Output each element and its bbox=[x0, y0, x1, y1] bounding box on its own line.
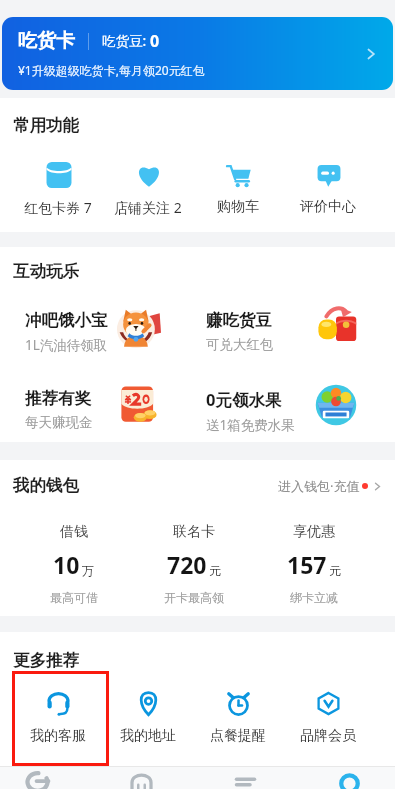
button[interactable]: 冲吧饿小宝 bbox=[0, 310, 197, 356]
staticText: 享优惠 bbox=[293, 523, 335, 541]
button[interactable]: 吃货卡 bbox=[2, 17, 393, 90]
staticText: 开卡最高领 bbox=[164, 590, 224, 605]
button[interactable]: 品牌会员 bbox=[283, 690, 373, 745]
staticText: 我的钱包 bbox=[13, 475, 79, 496]
staticText: 品牌会员 bbox=[300, 727, 356, 745]
staticText: 红包卡券 7 bbox=[24, 198, 92, 217]
other: Open eat card bbox=[363, 46, 379, 62]
staticText: 我的地址 bbox=[120, 727, 176, 745]
staticText: 720 bbox=[167, 549, 207, 580]
staticText: 常用功能 bbox=[13, 115, 79, 136]
staticText: 店铺关注 2 bbox=[114, 198, 182, 217]
button[interactable]: Orders bbox=[200, 767, 290, 789]
staticText: 元 bbox=[209, 563, 221, 578]
staticText: 每天赚现金 bbox=[25, 414, 93, 431]
button[interactable]: 赚吃货豆 bbox=[197, 310, 395, 356]
button[interactable]: 进入钱包·充值 bbox=[278, 477, 383, 495]
staticText: 0 bbox=[150, 30, 160, 52]
staticText: 联名卡 bbox=[173, 523, 215, 541]
button[interactable]: 评价中心 bbox=[283, 161, 373, 216]
staticText: 最高可借 bbox=[50, 590, 98, 605]
staticText: 0元领水果 bbox=[206, 388, 282, 411]
staticText: 我的客服 bbox=[30, 727, 86, 745]
button[interactable]: 联名卡 bbox=[134, 523, 254, 605]
button[interactable]: 购物车 bbox=[193, 161, 283, 216]
button[interactable]: 店铺关注 2 bbox=[103, 161, 193, 217]
staticText: 赚吃货豆 bbox=[206, 310, 272, 331]
staticText: 可兑大红包 bbox=[206, 336, 274, 353]
staticText: 推荐有奖 bbox=[25, 388, 91, 409]
staticText: 互动玩乐 bbox=[13, 261, 79, 282]
staticText: 冲吧饿小宝 bbox=[25, 310, 108, 331]
staticText: 157 bbox=[287, 549, 327, 580]
button[interactable]: 0元领水果 bbox=[197, 388, 395, 434]
staticText: 元 bbox=[329, 563, 341, 578]
staticText: 1L汽油待领取 bbox=[25, 336, 108, 354]
staticText: 购物车 bbox=[217, 198, 259, 216]
staticText: 送1箱免费水果 bbox=[206, 416, 295, 434]
staticText: 进入钱包·充值 bbox=[278, 477, 360, 495]
staticText: 吃货卡 bbox=[18, 29, 75, 53]
staticText: 更多推荐 bbox=[13, 650, 79, 671]
staticText: 10 bbox=[53, 549, 80, 580]
staticText: 绑卡立减 bbox=[290, 590, 338, 605]
button[interactable]: 点餐提醒 bbox=[193, 690, 283, 745]
button[interactable]: Discover bbox=[96, 767, 186, 789]
staticText: 借钱 bbox=[60, 523, 88, 541]
staticText: 万 bbox=[82, 563, 94, 578]
staticText: 点餐提醒 bbox=[210, 727, 266, 745]
button[interactable]: Takeout bbox=[0, 767, 82, 789]
button[interactable]: 红包卡券 7 bbox=[13, 161, 103, 217]
button[interactable]: 享优惠 bbox=[254, 523, 374, 605]
staticText: 吃货豆: bbox=[102, 32, 150, 50]
button[interactable]: Profile bbox=[304, 767, 394, 789]
button[interactable]: 我的客服 bbox=[13, 690, 103, 745]
button[interactable]: 我的地址 bbox=[103, 690, 193, 745]
staticText: ¥1升级超级吃货卡,每月领20元红包 bbox=[18, 62, 205, 78]
staticText: 评价中心 bbox=[300, 198, 356, 216]
button[interactable]: 推荐有奖 bbox=[0, 388, 197, 434]
button[interactable]: 借钱 bbox=[13, 523, 134, 605]
